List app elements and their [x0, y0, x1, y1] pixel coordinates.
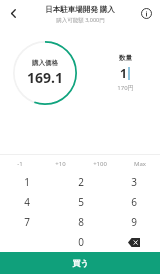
button[interactable]: 9	[107, 212, 160, 232]
staticText: 購入価格	[32, 59, 58, 67]
staticText: 1	[24, 175, 30, 189]
button[interactable]: 買う	[0, 252, 160, 274]
staticText: 7	[24, 215, 30, 229]
staticText: 1	[120, 65, 127, 81]
staticText: +100	[93, 160, 107, 168]
button[interactable]: 4	[0, 192, 54, 212]
button[interactable]: 8	[54, 212, 107, 232]
staticText: Max	[134, 160, 146, 168]
staticText: 数量	[119, 54, 132, 62]
button[interactable]: 3	[107, 172, 160, 192]
staticText: 4	[24, 195, 30, 209]
button[interactable]: +10	[40, 155, 80, 172]
button[interactable]: 6	[107, 192, 160, 212]
button[interactable]: Max	[120, 155, 160, 172]
staticText: 2	[78, 175, 84, 189]
button[interactable]: 2	[54, 172, 107, 192]
staticText: 9	[131, 215, 137, 229]
button[interactable]: Back	[0, 0, 27, 27]
button[interactable]: 1	[0, 172, 54, 192]
button[interactable]: 7	[0, 212, 54, 232]
staticText: 0	[78, 235, 84, 249]
button[interactable]: +100	[80, 155, 120, 172]
staticText: 3	[131, 175, 137, 189]
staticText: 6	[131, 195, 137, 209]
staticText: 170円	[117, 84, 134, 92]
staticText: 日本駐車場開発 購入	[45, 4, 115, 14]
staticText: +10	[55, 160, 66, 168]
button[interactable]: -1	[0, 155, 40, 172]
staticText: 5	[78, 195, 84, 209]
button[interactable]: Information	[133, 0, 160, 27]
staticText: 買う	[72, 258, 89, 268]
button[interactable]: 0	[54, 232, 107, 252]
staticText: 8	[78, 215, 84, 229]
staticText: 購入可能額 3,000円	[56, 16, 105, 24]
button[interactable]: Delete	[107, 232, 160, 252]
staticText: 169.1	[27, 68, 63, 87]
button[interactable]: 5	[54, 192, 107, 212]
staticText: -1	[17, 160, 23, 168]
